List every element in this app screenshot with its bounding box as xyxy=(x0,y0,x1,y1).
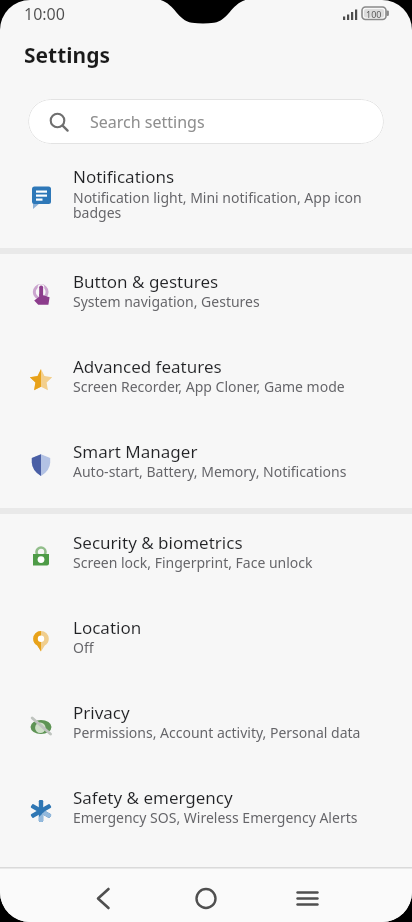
staticText: 10:00 xyxy=(24,3,65,25)
staticText: Smart Manager xyxy=(73,440,198,463)
staticText: Advanced features xyxy=(73,355,222,378)
staticText: 100 xyxy=(366,8,382,20)
button[interactable]: Button & gestures xyxy=(0,253,412,338)
button[interactable] xyxy=(60,872,146,917)
button[interactable]: Smart Manager xyxy=(0,423,412,508)
staticText: Off xyxy=(73,638,94,657)
button[interactable]: Safety & emergency xyxy=(0,769,412,854)
button[interactable]: Privacy xyxy=(0,684,412,769)
staticText: Security & biometrics xyxy=(73,531,243,554)
button[interactable] xyxy=(163,872,249,917)
staticText: Auto-start, Battery, Memory, Notificatio… xyxy=(73,462,347,481)
staticText: Permissions, Account activity, Personal … xyxy=(73,723,361,742)
staticText: Button & gestures xyxy=(73,270,219,293)
staticText: Settings xyxy=(24,41,111,70)
staticText: Location xyxy=(73,616,142,639)
button[interactable]: Notifications xyxy=(0,165,412,248)
staticText: Emergency SOS, Wireless Emergency Alerts xyxy=(73,808,358,827)
staticText: Screen lock, Fingerprint, Face unlock xyxy=(73,553,313,572)
button[interactable]: Location xyxy=(0,599,412,684)
staticText: Notifications xyxy=(73,165,175,188)
staticText: Screen Recorder, App Cloner, Game mode xyxy=(73,377,345,396)
staticText: badges xyxy=(73,203,122,222)
staticText: Safety & emergency xyxy=(73,786,233,809)
staticText: Privacy xyxy=(73,701,130,724)
staticText: System navigation, Gestures xyxy=(73,292,260,311)
button[interactable] xyxy=(265,872,351,917)
staticText: Search settings xyxy=(90,111,205,133)
button[interactable]: Security & biometrics xyxy=(0,514,412,599)
button[interactable]: Advanced features xyxy=(0,338,412,423)
button[interactable]: Search settings xyxy=(28,99,384,144)
staticText: Notification light, Mini notification, A… xyxy=(73,188,362,207)
